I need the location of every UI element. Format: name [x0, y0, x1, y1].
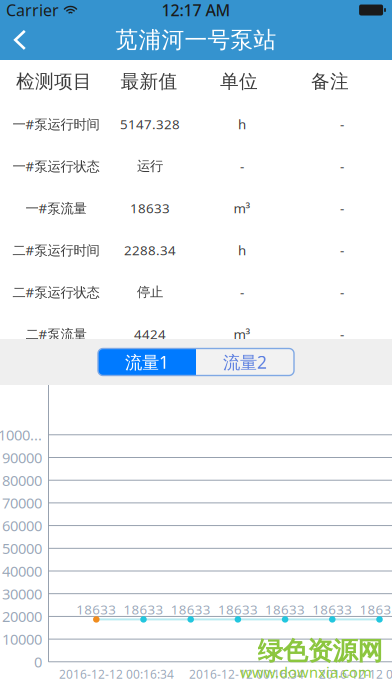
button[interactable]: 流量2 — [196, 348, 294, 375]
staticText: m³ — [233, 325, 250, 343]
staticText: 18633 — [130, 199, 170, 217]
staticText: 苋浦河一号泵站 — [115, 26, 276, 54]
staticText: 60000 — [2, 516, 42, 535]
staticText: 18633 — [218, 600, 258, 618]
staticText: 18633 — [76, 600, 116, 618]
staticText: 20000 — [2, 607, 42, 626]
staticText: 18633 — [171, 600, 211, 618]
staticText: h — [238, 241, 246, 259]
staticText: 0 — [34, 652, 42, 672]
staticText: 70000 — [2, 493, 42, 513]
staticText: Carrier — [6, 0, 59, 21]
staticText: 一#泵流量 — [25, 199, 86, 217]
staticText: m³ — [233, 199, 250, 217]
button[interactable]: 流量1 — [98, 348, 196, 375]
staticText: 2288.34 — [124, 241, 176, 259]
staticText: 80000 — [2, 470, 42, 490]
staticText: 18633 — [359, 600, 392, 618]
staticText: 一#泵运行状态 — [12, 157, 99, 175]
staticText: - — [240, 283, 244, 301]
staticText: - — [340, 199, 344, 217]
staticText: 30000 — [2, 584, 42, 603]
staticText: 一#泵运行时间 — [12, 115, 99, 133]
staticText: - — [340, 115, 344, 133]
staticText: 备注 — [311, 70, 349, 93]
staticText: - — [240, 157, 244, 175]
staticText: 90000 — [2, 448, 42, 467]
staticText: 2016-12-12 00:16:34 — [59, 666, 174, 682]
button[interactable]: Back — [0, 20, 40, 60]
staticText: - — [340, 325, 344, 343]
staticText: 二#泵运行状态 — [12, 283, 99, 301]
staticText: 二#泵流量 — [25, 325, 86, 343]
staticText: 二#泵运行时间 — [12, 241, 99, 259]
staticText: - — [340, 157, 344, 175]
staticText: h — [238, 115, 246, 133]
staticText: 10000 — [2, 629, 42, 649]
staticText: 18633 — [312, 600, 352, 618]
staticText: 绿色资源网 — [257, 635, 382, 666]
staticText: 18633 — [265, 600, 305, 618]
staticText: 流量1 — [125, 350, 169, 373]
staticText: 18633 — [123, 600, 163, 618]
staticText: - — [340, 283, 344, 301]
staticText: 1000... — [0, 425, 42, 445]
staticText: 最新值 — [120, 70, 177, 93]
staticText: 检测项目 — [16, 70, 92, 93]
staticText: 流量2 — [223, 350, 267, 373]
staticText: 2016-12-12 00:16:34 — [319, 666, 392, 682]
staticText: 12:17 AM — [161, 0, 230, 21]
staticText: 运行 — [137, 158, 163, 174]
staticText: 5147.328 — [120, 115, 180, 133]
staticText: 40000 — [2, 561, 42, 581]
staticText: 4424 — [134, 325, 166, 343]
staticText: 单位 — [220, 70, 258, 93]
staticText: 2016-12-12 00:16:34 — [189, 666, 304, 682]
staticText: 50000 — [2, 539, 42, 558]
staticText: - — [340, 241, 344, 259]
staticText: www.downxia.com — [240, 662, 372, 682]
staticText: 停止 — [137, 284, 163, 300]
